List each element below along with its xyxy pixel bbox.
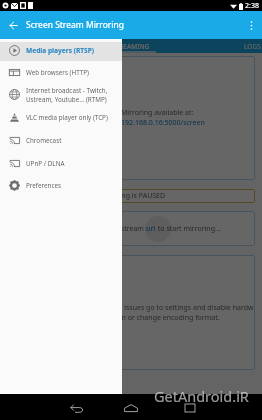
button[interactable]: Navigate up [0,11,26,39]
staticText: 2:38 [245,1,259,11]
button[interactable]: Home [117,395,145,420]
button[interactable]: Back [62,395,90,420]
button[interactable]: UPnP / DLNA [0,152,122,174]
staticText: Open stream [101,224,146,234]
button[interactable]: Web browsers (HTTP) [0,61,122,83]
staticText: url [146,224,156,234]
staticText: If you have issues go to settings and di… [86,303,255,313]
button[interactable]: Media players (RTSP) [0,39,122,61]
staticText: Mirroring available at: [121,108,194,118]
button[interactable]: VLC media player only (TCP) [0,106,122,129]
staticText: Internet broadcast - Twitch, [26,86,108,95]
staticText: Media players (RTSP) [26,46,95,55]
staticText: UPnP / DLNA [26,159,65,168]
staticText: STREAMING [112,42,150,51]
staticText: acceleration or change encoding format. [86,313,220,323]
staticText: GetAndroid.iR [154,386,249,406]
staticText: Web browsers (HTTP) [26,68,89,77]
button[interactable]: Chromecast [0,129,122,152]
staticText: Ustream, Youtube... (RTMP) [26,95,107,104]
staticText: to start mirroring... [156,224,221,234]
staticText: 192.168.0.16:5000/screen [121,118,205,128]
staticText: Streaming is PAUSED [96,191,166,201]
staticText: LOGS [244,42,261,51]
button[interactable]: Recent apps [176,395,204,420]
staticText: Preferences [26,181,62,190]
staticText: Chromecast [26,136,62,145]
staticText: VLC media player only (TCP) [26,113,108,122]
button[interactable]: LOGS [156,39,262,53]
button[interactable]: Preferences [0,174,122,196]
button[interactable]: More options [240,11,262,39]
button[interactable]: STREAMING [0,39,156,53]
button[interactable]: Internet broadcast - Twitch, [0,83,122,106]
staticText: Screen Stream Mirroring [26,19,125,31]
